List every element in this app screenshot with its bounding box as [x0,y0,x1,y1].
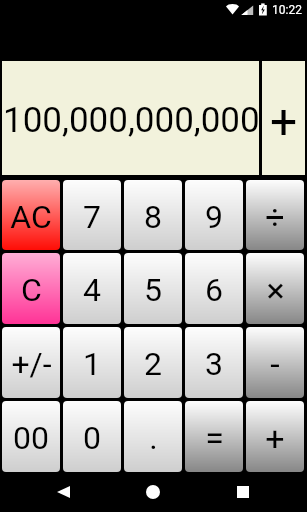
button[interactable]: 9 [185,180,243,250]
staticText: 6 [205,271,223,309]
button[interactable]: = [185,401,243,472]
button[interactable]: × [246,253,304,324]
staticText: 4 [83,271,101,309]
button[interactable]: 00 [2,401,60,472]
staticText: AC [10,198,52,236]
button[interactable]: 0 [63,401,121,472]
button[interactable]: Home [108,472,198,512]
staticText: = [205,418,224,458]
button[interactable]: 100,000,000,000 [2,61,259,175]
staticText: 8 [144,198,162,236]
staticText: +/- [11,345,52,383]
staticText: + [265,418,285,458]
button[interactable]: 8 [124,180,182,250]
button[interactable]: Recents [198,472,288,512]
staticText: 7 [83,198,101,236]
button[interactable]: + [262,61,305,175]
button[interactable]: Back [19,472,108,512]
button[interactable]: 1 [63,327,121,398]
staticText: × [266,270,285,310]
button[interactable]: 4 [63,253,121,324]
staticText: 5 [144,271,162,309]
staticText: 9 [205,198,223,236]
staticText: 10:22 [272,3,302,17]
staticText: 3 [205,345,223,383]
button[interactable]: +/- [2,327,60,398]
staticText: - [270,344,280,384]
button[interactable]: 7 [63,180,121,250]
staticText: 0 [83,419,101,457]
staticText: ÷ [265,197,285,237]
button[interactable]: 6 [185,253,243,324]
staticText: + [270,93,298,149]
button[interactable]: + [246,401,304,472]
staticText: . [149,419,158,457]
button[interactable]: - [246,327,304,398]
button[interactable]: C [2,253,60,324]
button[interactable]: . [124,401,182,472]
staticText: 2 [144,345,162,383]
button[interactable]: 2 [124,327,182,398]
staticText: 00 [13,419,49,457]
staticText: 100,000,000,000 [3,100,259,141]
button[interactable]: 5 [124,253,182,324]
staticText: 1 [83,345,101,383]
button[interactable]: AC [2,180,60,250]
button[interactable]: ÷ [246,180,304,250]
button[interactable]: 3 [185,327,243,398]
staticText: C [21,271,42,309]
